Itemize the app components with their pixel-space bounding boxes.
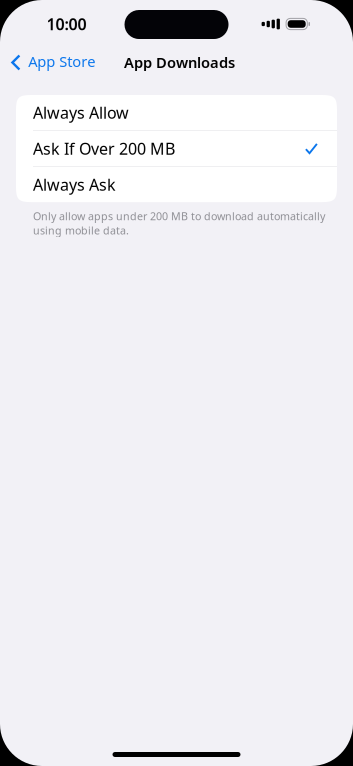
staticText: App Store [28,51,95,71]
staticText: Only allow apps under 200 MB to download… [33,209,325,237]
button[interactable]: Always Allow [16,95,337,130]
staticText: 10:00 [46,13,86,35]
staticText: Ask If Over 200 MB [33,138,175,159]
button[interactable]: Always Ask [16,167,337,202]
button[interactable]: Back to App Store [0,46,95,79]
staticText: Always Allow [33,102,129,123]
staticText: App Downloads [124,52,235,72]
staticText: Always Ask [33,174,116,195]
button[interactable]: Ask If Over 200 MB [16,131,337,166]
